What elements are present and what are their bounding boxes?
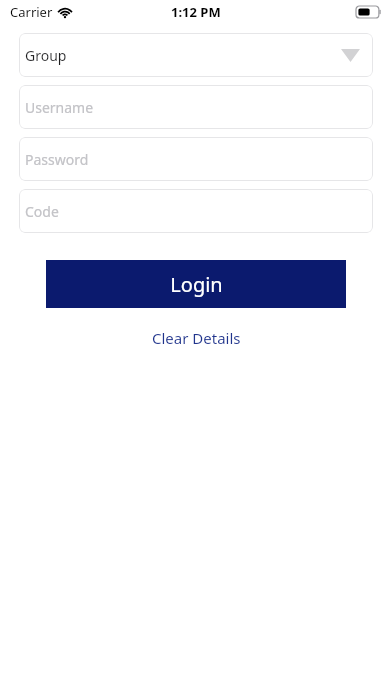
button[interactable]: Login: [46, 260, 346, 308]
button[interactable]: Clear Details: [140, 324, 253, 352]
button[interactable]: Username: [19, 85, 373, 129]
staticText: Password: [25, 150, 89, 169]
staticText: Carrier: [10, 3, 53, 21]
staticText: Clear Details: [152, 328, 241, 348]
staticText: Code: [25, 202, 59, 221]
button[interactable]: Group: [19, 33, 373, 77]
button[interactable]: Code: [19, 189, 373, 233]
staticText: Group: [25, 46, 67, 65]
staticText: Username: [25, 98, 94, 117]
other: Open Group picker: [339, 44, 361, 66]
staticText: 1:12 PM: [171, 3, 221, 21]
staticText: Login: [170, 271, 223, 298]
button[interactable]: Password: [19, 137, 373, 181]
